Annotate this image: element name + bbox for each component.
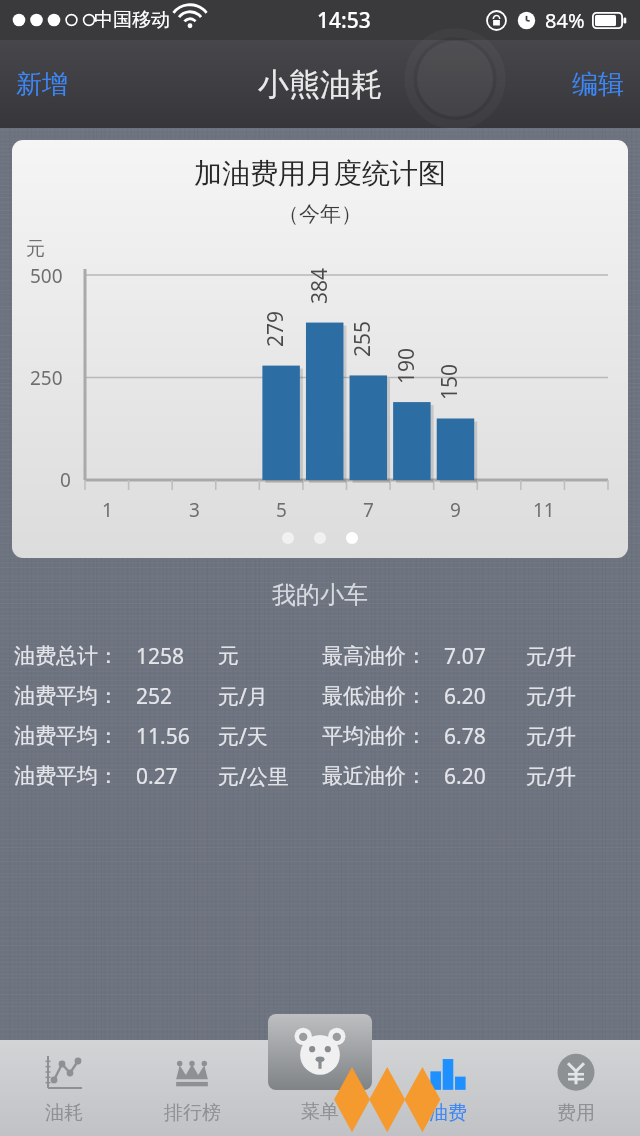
staticText: 11 xyxy=(533,497,555,523)
staticText: 中国移动 xyxy=(94,8,170,32)
staticText: 最低油价： xyxy=(322,683,427,709)
staticText: 油费 xyxy=(429,1101,467,1125)
staticText: 排行榜 xyxy=(164,1101,221,1125)
button[interactable]: 油费 xyxy=(384,1040,512,1136)
staticText: 元 xyxy=(26,237,45,261)
staticText: 84% xyxy=(545,7,585,34)
staticText: 0 xyxy=(60,467,71,493)
staticText: 250 xyxy=(30,365,63,391)
staticText: 5 xyxy=(276,497,287,523)
button[interactable]: 费用 xyxy=(512,1040,640,1136)
staticText: 255 xyxy=(348,320,377,357)
staticText: 190 xyxy=(392,347,421,384)
staticText: 279 xyxy=(261,310,290,347)
staticText: 元/升 xyxy=(526,762,576,791)
staticText: 500 xyxy=(30,263,63,289)
staticText: 0.27 xyxy=(136,762,178,791)
staticText: 元/升 xyxy=(526,642,576,671)
staticText: 元/公里 xyxy=(218,762,289,791)
staticText: 6.20 xyxy=(444,682,486,711)
staticText: 1 xyxy=(102,497,113,523)
staticText: 7.07 xyxy=(444,642,486,671)
staticText: 元/月 xyxy=(218,682,268,711)
staticText: 油费平均： xyxy=(14,763,119,789)
staticText: 150 xyxy=(435,363,464,400)
staticText: 252 xyxy=(136,682,173,711)
staticText: 6.78 xyxy=(444,722,486,751)
staticText: 小熊油耗 xyxy=(258,65,382,104)
staticText: 384 xyxy=(305,267,334,304)
staticText: 3 xyxy=(189,497,200,523)
staticText: 平均油价： xyxy=(322,723,427,749)
staticText: 费用 xyxy=(557,1101,595,1125)
staticText: 油耗 xyxy=(45,1101,83,1125)
staticText: 最近油价： xyxy=(322,763,427,789)
staticText: 油费平均： xyxy=(14,723,119,749)
staticText: （今年） xyxy=(278,201,362,227)
button[interactable]: 新增 xyxy=(0,54,84,115)
staticText: 加油费用月度统计图 xyxy=(194,156,446,191)
staticText: 油费平均： xyxy=(14,683,119,709)
staticText: 我的小车 xyxy=(0,580,640,610)
staticText: 元 xyxy=(218,643,239,669)
staticText: 编辑 xyxy=(572,68,624,101)
staticText: 11.56 xyxy=(136,722,190,751)
staticText: 1258 xyxy=(136,642,185,671)
button[interactable]: 排行榜 xyxy=(128,1040,256,1136)
staticText: 油费总计： xyxy=(14,643,119,669)
staticText: 9 xyxy=(450,497,461,523)
staticText: 元/升 xyxy=(526,722,576,751)
staticText: 菜单 xyxy=(301,1100,339,1124)
staticText: 6.20 xyxy=(444,762,486,791)
staticText: 7 xyxy=(363,497,374,523)
staticText: 14:53 xyxy=(317,6,371,35)
staticText: 最高油价： xyxy=(322,643,427,669)
staticText: 元/天 xyxy=(218,722,268,751)
button[interactable]: 油耗 xyxy=(0,1040,128,1136)
staticText: 元/升 xyxy=(526,682,576,711)
button[interactable]: 编辑 xyxy=(556,54,640,115)
staticText: 新增 xyxy=(16,68,68,101)
button[interactable]: 菜单 xyxy=(268,1014,372,1090)
button[interactable]: 加油费用月度统计图 xyxy=(12,140,628,558)
